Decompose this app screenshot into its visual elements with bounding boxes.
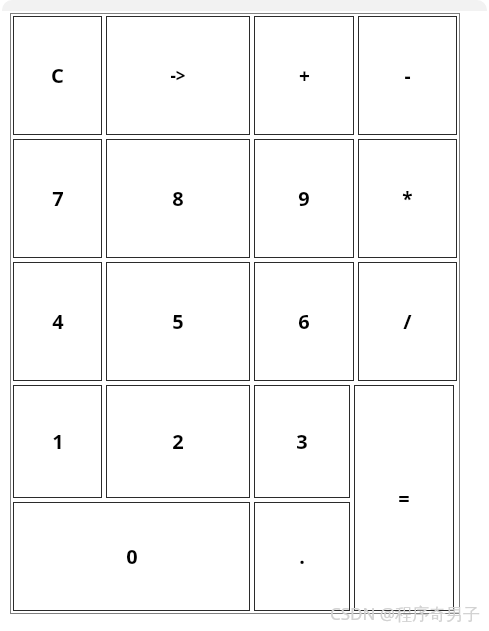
staticText: 8 [172, 185, 184, 212]
staticText: CSDN @程序奇男子 [330, 602, 481, 625]
staticText: 3 [296, 428, 308, 455]
button[interactable]: 6 [254, 262, 354, 381]
button[interactable]: 4 [13, 262, 102, 381]
staticText: 4 [52, 308, 64, 335]
staticText: 7 [52, 185, 64, 212]
staticText: 5 [172, 308, 184, 335]
staticText: 1 [52, 428, 64, 455]
button[interactable]: * [358, 139, 457, 258]
button[interactable]: -> [106, 16, 250, 135]
staticText: / [403, 308, 412, 335]
button[interactable]: 3 [254, 385, 350, 498]
button[interactable]: 2 [106, 385, 250, 498]
button[interactable]: C [13, 16, 102, 135]
button[interactable]: / [358, 262, 457, 381]
staticText: -> [170, 64, 186, 87]
button[interactable]: 7 [13, 139, 102, 258]
button[interactable]: 8 [106, 139, 250, 258]
staticText: - [404, 63, 411, 89]
staticText: 9 [298, 185, 310, 212]
button[interactable]: 9 [254, 139, 354, 258]
staticText: 2 [172, 428, 184, 455]
button[interactable]: = [354, 385, 454, 611]
staticText: * [402, 186, 413, 212]
button[interactable]: + [254, 16, 354, 135]
staticText: . [299, 543, 305, 570]
staticText: 0 [126, 543, 138, 570]
staticText: = [398, 485, 410, 512]
button[interactable]: 5 [106, 262, 250, 381]
button[interactable]: . [254, 502, 350, 611]
button[interactable]: - [358, 16, 457, 135]
staticText: + [299, 63, 310, 89]
staticText: C [51, 62, 64, 89]
staticText: 6 [298, 308, 310, 335]
button[interactable]: 0 [13, 502, 250, 611]
button[interactable]: 1 [13, 385, 102, 498]
